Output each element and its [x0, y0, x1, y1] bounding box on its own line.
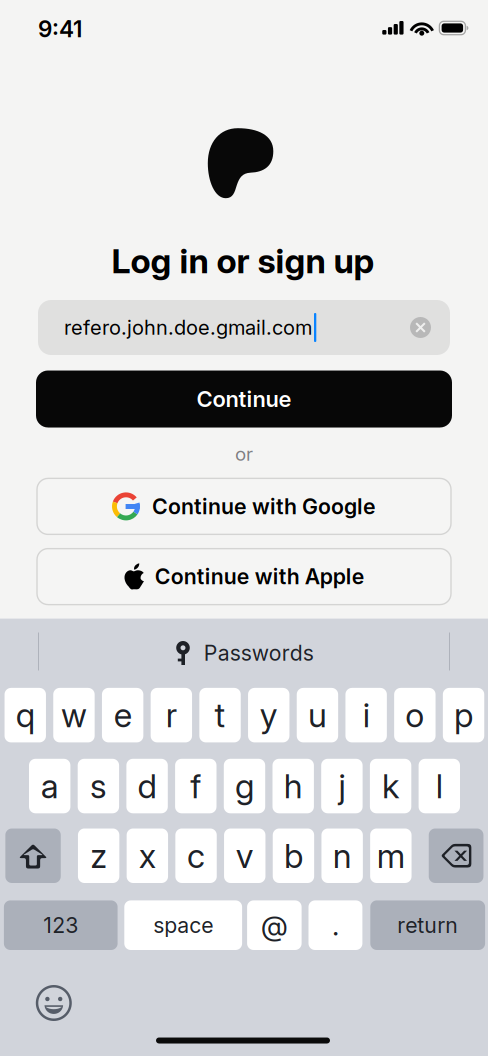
button[interactable]: u	[297, 688, 338, 742]
staticText: space	[153, 912, 213, 938]
button[interactable]: i	[345, 688, 387, 742]
staticText: Passwords	[204, 640, 314, 666]
button[interactable]: n	[321, 828, 363, 883]
button[interactable]: q	[5, 688, 46, 742]
button[interactable]: h	[272, 759, 314, 813]
button[interactable]: g	[224, 759, 265, 813]
button[interactable]: f	[175, 759, 216, 813]
button[interactable]: z	[78, 828, 119, 883]
button[interactable]: refero.john.doe.gmail.com	[38, 300, 450, 355]
button[interactable]: 123	[4, 900, 118, 950]
button[interactable]: Shift	[5, 828, 61, 883]
staticText: y	[260, 695, 278, 735]
staticText: b	[284, 836, 303, 876]
button[interactable]: Continue with Google	[37, 478, 451, 534]
staticText: Log in or sign up	[111, 240, 374, 281]
staticText: 123	[43, 912, 78, 938]
staticText: refero.john.doe.gmail.com	[64, 315, 312, 340]
staticText: n	[333, 836, 352, 876]
staticText: q	[16, 695, 35, 735]
button[interactable]: b	[273, 828, 314, 883]
staticText: .	[332, 908, 339, 942]
staticText: a	[41, 766, 59, 806]
button[interactable]: Continue	[36, 370, 452, 427]
staticText: r	[166, 695, 177, 735]
button[interactable]: c	[175, 828, 217, 883]
staticText: u	[308, 695, 327, 735]
staticText: return	[397, 912, 458, 938]
button[interactable]: return	[370, 900, 485, 950]
button[interactable]: t	[199, 688, 241, 742]
staticText: x	[139, 836, 156, 876]
staticText: 9:41	[38, 15, 82, 43]
staticText: t	[215, 695, 226, 735]
button[interactable]: w	[53, 688, 95, 742]
button[interactable]: space	[124, 900, 242, 950]
staticText: v	[236, 836, 254, 876]
button[interactable]: l	[419, 759, 460, 813]
button[interactable]: e	[102, 688, 143, 742]
staticText: h	[284, 766, 303, 806]
button[interactable]: v	[224, 828, 265, 883]
staticText: Continue with Apple	[155, 564, 365, 589]
staticText: z	[90, 836, 107, 876]
button[interactable]: .	[308, 900, 362, 950]
staticText: i	[363, 695, 370, 735]
button[interactable]: @	[247, 900, 302, 950]
staticText: g	[235, 766, 254, 806]
staticText: or	[235, 443, 253, 465]
staticText: f	[190, 766, 201, 806]
button[interactable]: y	[248, 688, 289, 742]
staticText: w	[61, 695, 87, 735]
staticText: Continue with Google	[152, 493, 376, 519]
staticText: p	[454, 695, 473, 735]
staticText: o	[405, 695, 424, 735]
staticText: l	[436, 766, 443, 806]
button[interactable]: d	[126, 759, 168, 813]
staticText: k	[382, 766, 399, 806]
button[interactable]: Continue with Apple	[37, 549, 451, 605]
staticText: j	[338, 766, 345, 806]
button[interactable]: a	[29, 759, 70, 813]
button[interactable]: Emoji	[27, 976, 80, 1030]
button[interactable]: j	[321, 759, 363, 813]
staticText: @	[261, 908, 288, 942]
staticText: e	[114, 695, 132, 735]
staticText: Continue	[196, 386, 291, 412]
button[interactable]: Passwords	[160, 631, 330, 675]
button[interactable]: x	[127, 828, 168, 883]
staticText: d	[138, 766, 157, 806]
staticText: c	[187, 836, 205, 876]
button[interactable]: s	[78, 759, 119, 813]
button[interactable]: k	[370, 759, 411, 813]
button[interactable]: o	[394, 688, 435, 742]
staticText: s	[90, 766, 107, 806]
button[interactable]: r	[151, 688, 192, 742]
button[interactable]: p	[443, 688, 484, 742]
staticText: m	[377, 836, 405, 876]
button[interactable]: Delete	[429, 828, 483, 883]
button[interactable]: m	[370, 828, 411, 883]
